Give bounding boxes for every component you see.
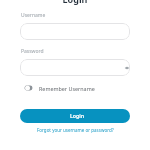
button[interactable]: [20, 23, 130, 40]
button[interactable]: Show password: [20, 59, 130, 76]
staticText: Login: [70, 112, 85, 119]
button[interactable]: Show password: [123, 64, 130, 72]
staticText: Password: [21, 48, 44, 55]
staticText: Username: [21, 12, 46, 19]
button[interactable]: Forgot your username or password?: [0, 127, 150, 133]
button[interactable]: Login: [20, 109, 130, 123]
staticText: Login: [0, 0, 150, 5]
staticText: Remember Username: [39, 85, 95, 92]
staticText: Forgot your username or password?: [37, 127, 114, 133]
button[interactable]: Remember Username: [24, 84, 95, 92]
